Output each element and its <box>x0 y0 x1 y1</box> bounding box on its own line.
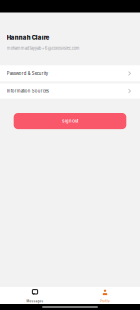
button[interactable]: Information Sources <box>0 83 140 99</box>
staticText: Information Sources <box>7 88 49 94</box>
button[interactable]: Messages <box>0 287 70 304</box>
staticText: Sign Out <box>62 119 78 123</box>
staticText: mohammadtayyab+6@coxxsvsiec.com <box>7 46 80 51</box>
staticText: Password & Security <box>7 71 48 76</box>
staticText: Messages <box>26 299 43 303</box>
staticText: Hannah Claire <box>7 34 50 41</box>
button[interactable]: Password & Security <box>0 65 140 82</box>
staticText: Profile <box>100 299 110 303</box>
button[interactable]: Sign Out <box>14 113 126 129</box>
button[interactable]: Profile <box>70 287 140 304</box>
